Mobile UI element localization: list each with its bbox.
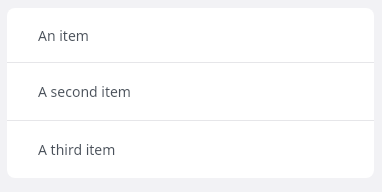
staticText: A third item: [38, 140, 116, 159]
button[interactable]: A third item: [7, 121, 374, 178]
button[interactable]: An item: [7, 8, 374, 62]
button[interactable]: A second item: [7, 63, 374, 120]
staticText: A second item: [38, 82, 131, 101]
staticText: An item: [38, 26, 89, 45]
